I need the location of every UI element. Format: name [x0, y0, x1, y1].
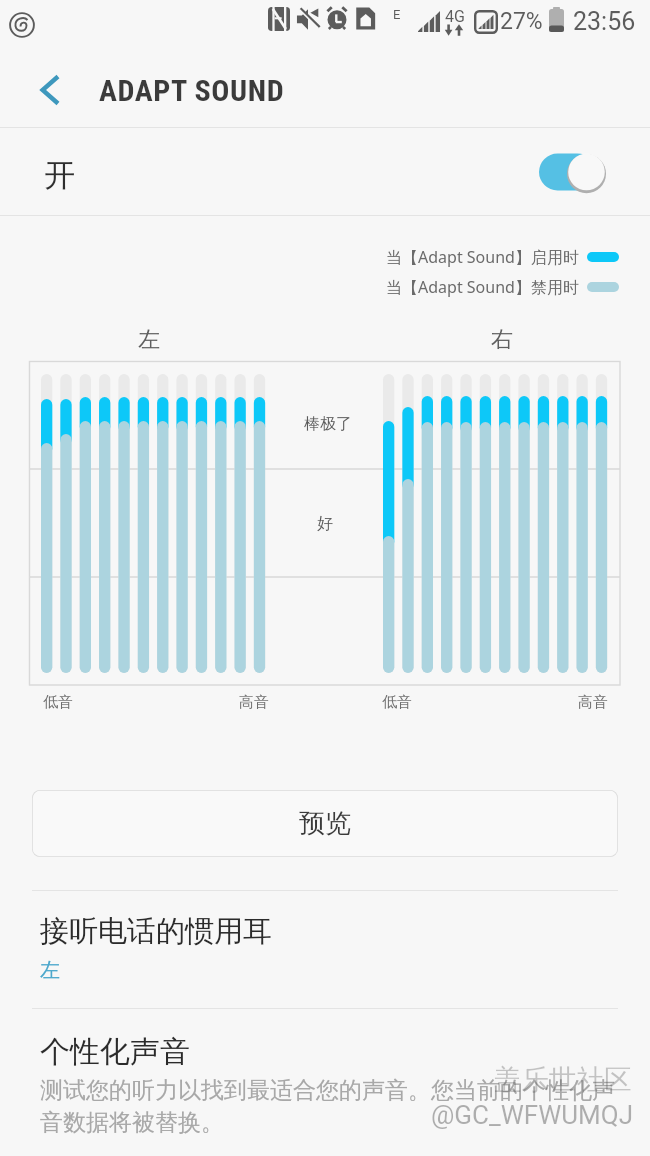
staticText: 左	[138, 326, 160, 354]
staticText: ADAPT SOUND	[99, 73, 285, 108]
button[interactable]: Back	[14, 52, 86, 127]
button[interactable]: 接听电话的惯用耳	[0, 891, 650, 1005]
staticText: 测试您的听力以找到最适合您的声音。您当前的个性化声音数据将被替换。	[40, 1076, 632, 1137]
staticText: 当【Adapt Sound】启用时	[386, 246, 579, 268]
staticText: 左	[40, 958, 60, 983]
button[interactable]: 开	[0, 128, 650, 215]
staticText: 4G	[445, 7, 465, 26]
staticText: @GC_WFWUMQJ	[431, 1100, 634, 1130]
staticText: 右	[491, 326, 513, 354]
staticText: 27%	[500, 8, 543, 35]
staticText: 好	[317, 514, 333, 534]
staticText: 预览	[299, 807, 351, 840]
staticText: 接听电话的惯用耳	[40, 913, 272, 950]
staticText: 高音	[239, 693, 269, 712]
staticText: 开	[44, 156, 75, 195]
button[interactable]: 预览	[32, 790, 618, 857]
staticText: 当【Adapt Sound】禁用时	[386, 276, 579, 298]
staticText: E	[393, 7, 401, 22]
staticText: 棒极了	[304, 414, 352, 434]
staticText: 高音	[578, 693, 608, 712]
staticText: 低音	[382, 693, 412, 712]
staticText: 盖乐世社区	[494, 1063, 632, 1098]
staticText: 个性化声音	[40, 1033, 190, 1071]
staticText: 低音	[43, 693, 73, 712]
button[interactable]: 个性化声音	[0, 1009, 650, 1137]
staticText: 23:56	[573, 7, 636, 36]
